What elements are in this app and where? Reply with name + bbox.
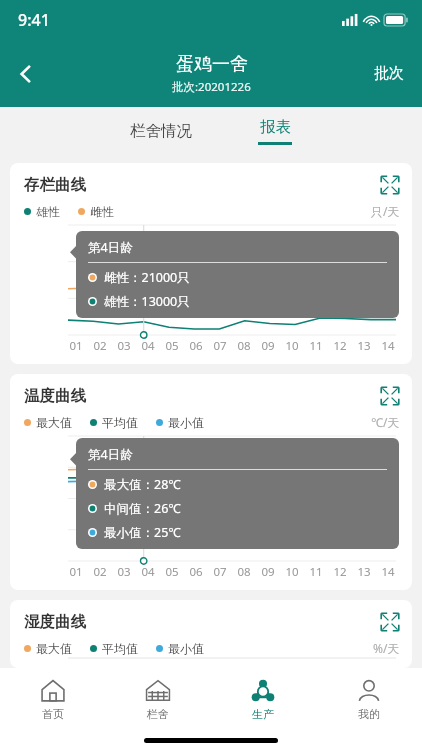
- staticText: 11: [304, 338, 328, 354]
- staticText: 平均值: [102, 641, 138, 656]
- staticText: 14: [376, 564, 400, 580]
- staticText: 存栏曲线: [24, 175, 86, 195]
- staticText: 我的: [358, 707, 380, 721]
- staticText: 13: [352, 338, 376, 354]
- staticText: 报表: [260, 117, 291, 137]
- staticText: 最大值: [36, 415, 72, 430]
- staticText: 11: [304, 564, 328, 580]
- button[interactable]: 首页: [0, 668, 105, 730]
- staticText: 10: [280, 564, 304, 580]
- staticText: 03: [112, 564, 136, 580]
- staticText: 湿度曲线: [24, 612, 86, 632]
- staticText: 最小值: [168, 641, 204, 656]
- staticText: 最大值: [36, 641, 72, 656]
- staticText: 栏舍情况: [130, 121, 192, 141]
- button[interactable]: Expand chart: [380, 175, 400, 195]
- staticText: 生产: [252, 707, 274, 721]
- staticText: 04: [136, 564, 160, 580]
- button[interactable]: 我的: [316, 668, 422, 730]
- staticText: 雌性: [90, 204, 114, 219]
- staticText: 07: [208, 338, 232, 354]
- button[interactable]: Back: [0, 48, 52, 100]
- staticText: 第4日龄: [88, 446, 133, 463]
- staticText: 10: [280, 338, 304, 354]
- staticText: 13: [352, 564, 376, 580]
- staticText: 04: [136, 338, 160, 354]
- button[interactable]: 批次: [370, 56, 408, 91]
- staticText: 平均值: [102, 415, 138, 430]
- staticText: 雄性: [36, 204, 60, 219]
- staticText: 02: [88, 564, 112, 580]
- button[interactable]: 栏舍情况: [116, 115, 206, 147]
- staticText: 06: [184, 338, 208, 354]
- staticText: 07: [208, 564, 232, 580]
- staticText: 批次:20201226: [172, 79, 251, 95]
- staticText: 雄性：13000只: [104, 293, 190, 310]
- staticText: 01: [64, 338, 88, 354]
- staticText: 08: [232, 338, 256, 354]
- button[interactable]: 栏舍: [105, 668, 210, 730]
- button[interactable]: Expand chart: [380, 612, 400, 632]
- staticText: 最大值：28℃: [104, 476, 181, 493]
- staticText: 栏舍: [147, 707, 169, 721]
- staticText: 12: [328, 338, 352, 354]
- staticText: 首页: [42, 707, 64, 721]
- staticText: 中间值：26℃: [104, 500, 181, 517]
- staticText: 05: [160, 564, 184, 580]
- button[interactable]: Expand chart: [380, 386, 400, 406]
- staticText: 08: [232, 564, 256, 580]
- staticText: 9:41: [18, 9, 50, 31]
- staticText: 05: [160, 338, 184, 354]
- staticText: 03: [112, 338, 136, 354]
- staticText: 最小值：25℃: [104, 524, 181, 541]
- staticText: 09: [256, 338, 280, 354]
- staticText: 蛋鸡一舍: [176, 53, 248, 76]
- button[interactable]: 报表: [244, 117, 306, 145]
- staticText: 第4日龄: [88, 239, 133, 256]
- staticText: 02: [88, 338, 112, 354]
- staticText: 12: [328, 564, 352, 580]
- staticText: ℃/天: [371, 414, 400, 430]
- staticText: 温度曲线: [24, 386, 86, 406]
- staticText: 只/天: [371, 203, 400, 219]
- staticText: 09: [256, 564, 280, 580]
- staticText: 雌性：21000只: [104, 269, 190, 286]
- button[interactable]: 生产: [210, 668, 316, 730]
- staticText: 01: [64, 564, 88, 580]
- staticText: 最小值: [168, 415, 204, 430]
- staticText: %/天: [373, 640, 400, 656]
- staticText: 14: [376, 338, 400, 354]
- staticText: 批次: [374, 64, 404, 83]
- staticText: 06: [184, 564, 208, 580]
